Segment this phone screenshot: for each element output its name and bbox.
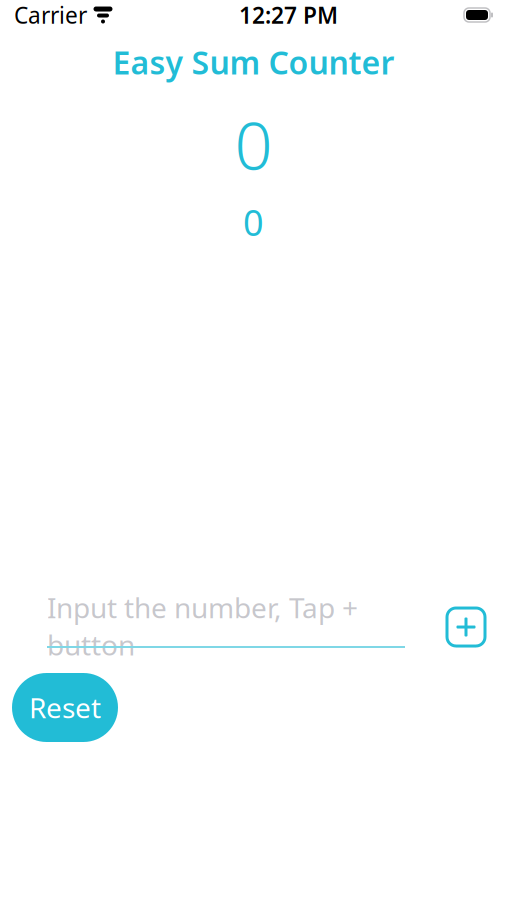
staticText: Input the number, Tap + button bbox=[47, 589, 358, 663]
button[interactable]: Reset bbox=[12, 673, 118, 742]
staticText: 12:27 PM bbox=[239, 0, 338, 30]
staticText: 0 bbox=[243, 198, 264, 246]
staticText: Reset bbox=[29, 689, 101, 726]
staticText: Easy Sum Counter bbox=[112, 41, 394, 83]
button[interactable]: Add bbox=[444, 605, 488, 649]
staticText: 0 bbox=[234, 100, 272, 188]
staticText: Carrier bbox=[14, 0, 87, 30]
